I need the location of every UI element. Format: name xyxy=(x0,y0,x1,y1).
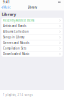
staticText: Genres and Moods xyxy=(3,41,29,45)
staticText: Recently Added Items xyxy=(3,19,34,22)
button[interactable]: Albums Collection xyxy=(1,29,63,34)
button[interactable]: 7 playlists, 214 songs xyxy=(3,92,33,98)
staticText: Albums Collection xyxy=(3,30,29,33)
button[interactable]: Recently Added Items xyxy=(1,18,63,23)
staticText: 9:41 xyxy=(3,0,10,4)
staticText: Artists and Bands xyxy=(3,24,26,28)
button[interactable]: Music xyxy=(2,5,10,10)
staticText: 7 playlists, 214 songs xyxy=(3,93,33,97)
staticText: Compilation Sets xyxy=(3,47,26,50)
button[interactable]: Songs in Library xyxy=(1,35,63,40)
staticText: Songs in Library xyxy=(3,35,24,39)
button[interactable]: Downloaded Music xyxy=(1,51,63,57)
button[interactable]: Genres and Moods xyxy=(1,40,63,45)
staticText: Library xyxy=(2,12,16,17)
staticText: Downloaded Music xyxy=(3,52,29,56)
button[interactable]: Compilation Sets xyxy=(1,46,63,51)
button[interactable]: Artists and Bands xyxy=(1,23,63,29)
staticText: Library xyxy=(27,6,36,9)
staticText: Music xyxy=(3,6,10,9)
